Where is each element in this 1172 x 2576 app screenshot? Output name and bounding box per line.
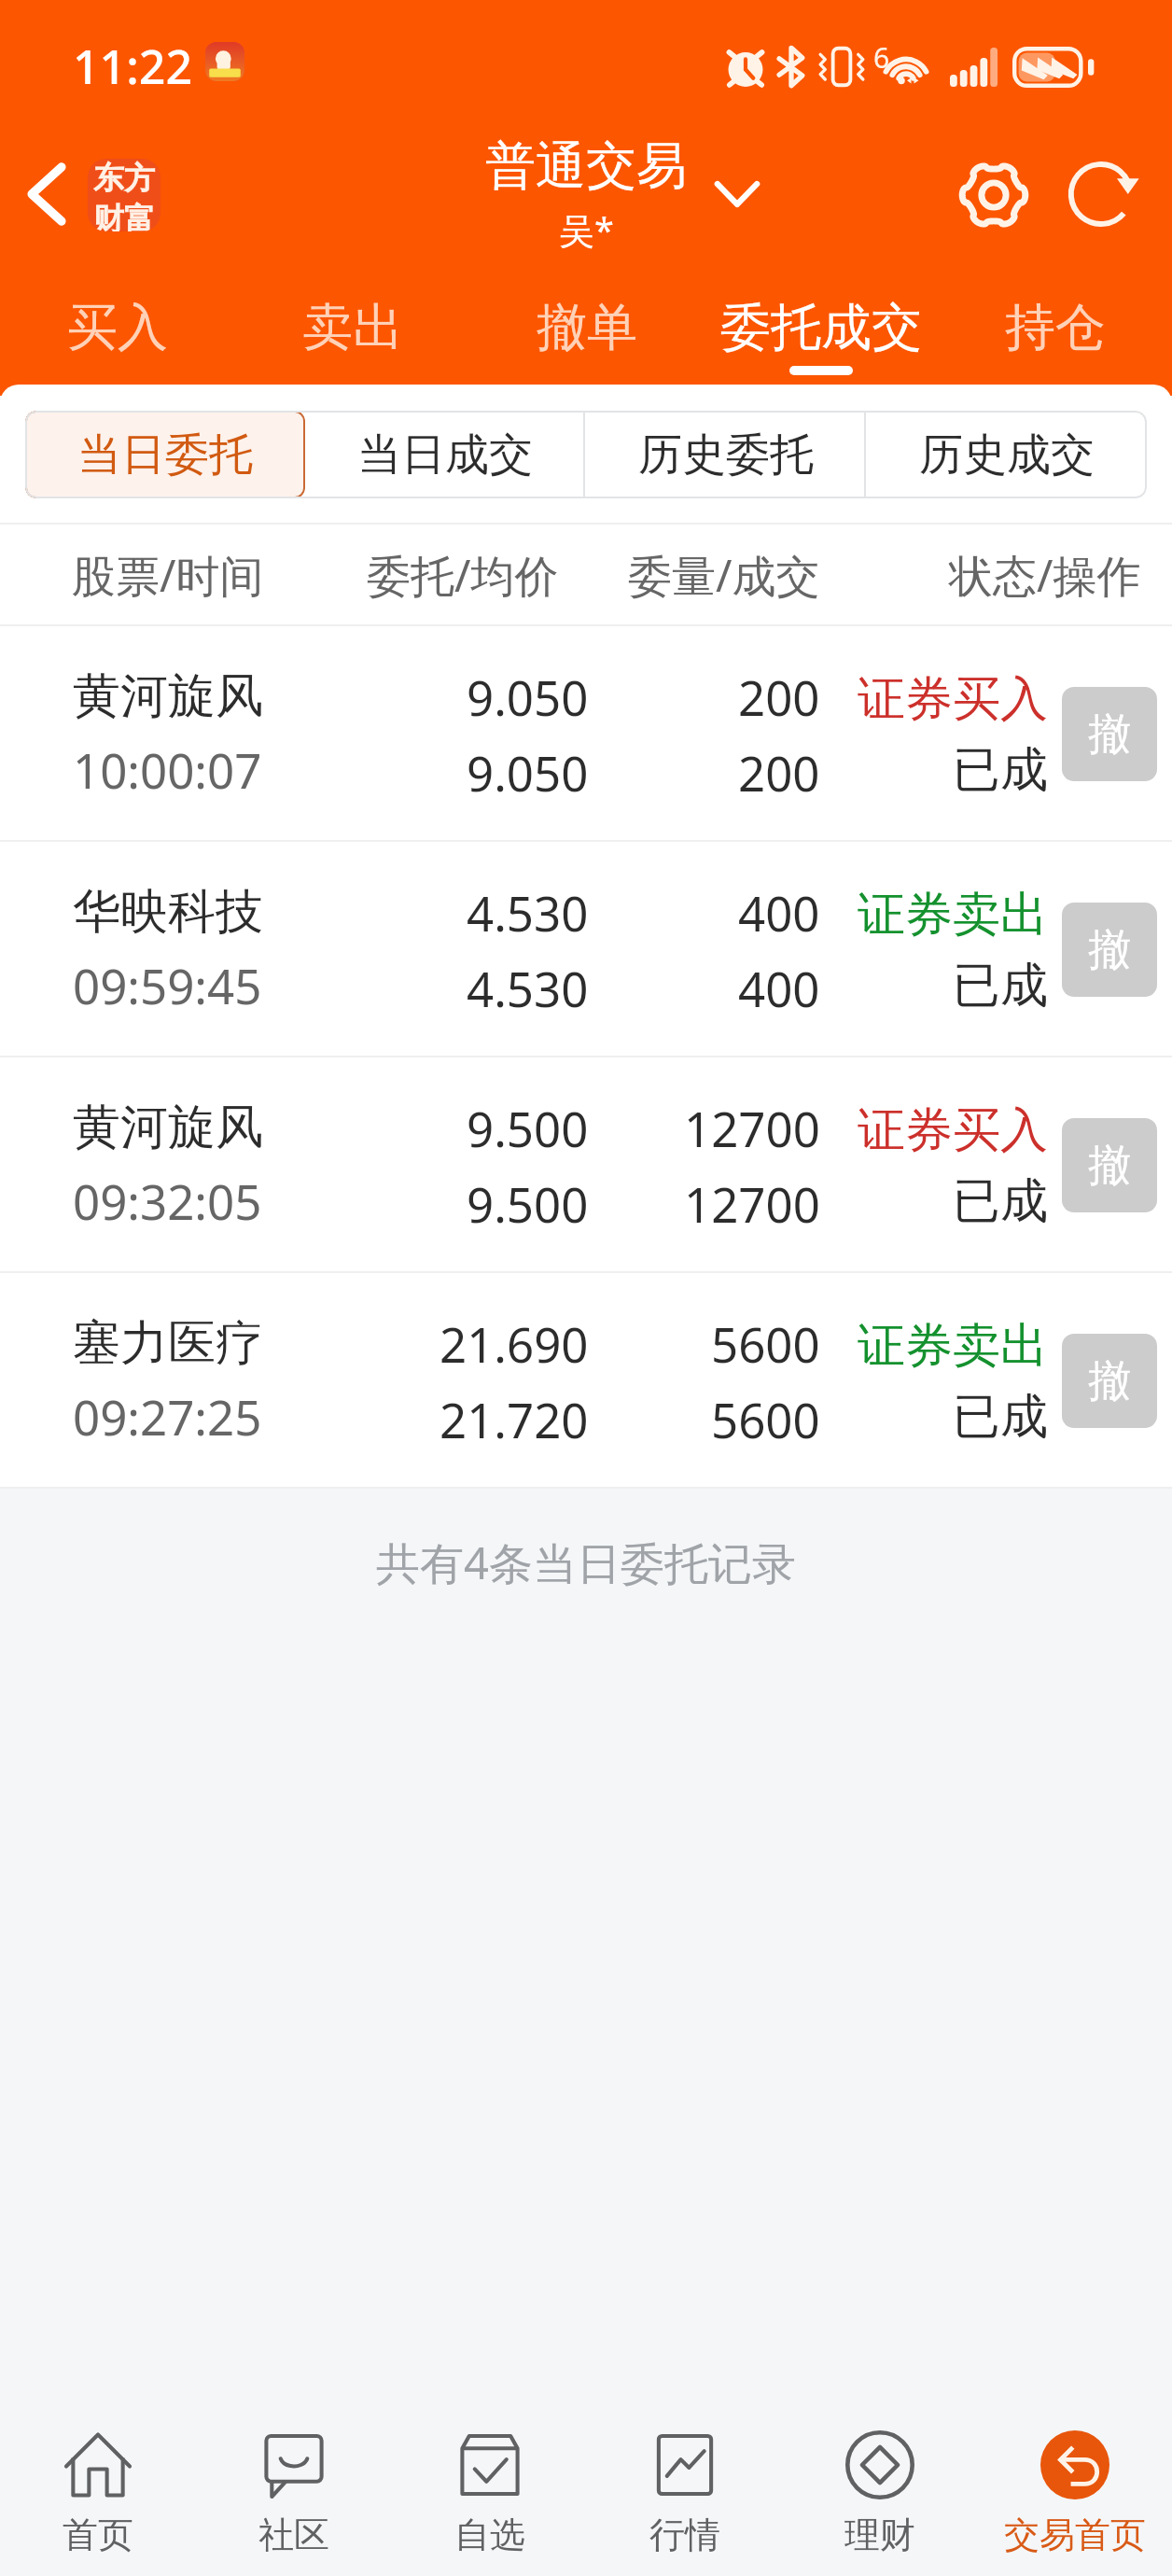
staticText: 塞力医疗 — [73, 1313, 263, 1373]
staticText: 状态/操作 — [949, 545, 1141, 605]
staticText: 200 — [738, 665, 820, 729]
button[interactable]: 撤 — [1062, 687, 1157, 781]
staticText: 证券卖出 — [858, 1316, 1048, 1376]
staticText: 华映科技 — [73, 882, 263, 942]
staticText: 买入 — [67, 296, 168, 359]
staticText: 400 — [738, 880, 820, 945]
button[interactable]: Settings — [949, 149, 1039, 239]
staticText: 社区 — [258, 2513, 329, 2557]
staticText: 09:32:05 — [73, 1169, 262, 1233]
staticText: 撤 — [1088, 923, 1131, 977]
staticText: 撤单 — [537, 296, 637, 359]
staticText: 东方 — [93, 159, 155, 198]
button[interactable]: 塞力医疗 — [0, 1273, 1172, 1489]
staticText: 5600 — [711, 1311, 820, 1376]
staticText: 理财 — [844, 2513, 915, 2557]
button[interactable]: 委托成交 — [704, 275, 938, 396]
button[interactable]: 撤单 — [469, 275, 704, 396]
button[interactable]: 当日委托 — [25, 411, 305, 498]
staticText: 9.050 — [467, 740, 589, 805]
staticText: 已成 — [953, 956, 1048, 1015]
button[interactable]: 撤 — [1062, 1334, 1157, 1428]
staticText: 当日成交 — [357, 427, 533, 483]
staticText: 撤 — [1088, 1354, 1131, 1408]
button[interactable]: 买入 — [0, 275, 235, 396]
staticText: 行情 — [649, 2513, 720, 2557]
button[interactable]: 黄河旋风 — [0, 626, 1172, 842]
staticText: 历史成交 — [919, 427, 1095, 483]
staticText: 股票/时间 — [72, 545, 264, 605]
staticText: 已成 — [953, 1387, 1048, 1447]
button[interactable]: 撤 — [1062, 1118, 1157, 1212]
staticText: 持仓 — [1005, 296, 1106, 359]
staticText: 21.720 — [439, 1387, 589, 1451]
button[interactable]: 自选 — [392, 2389, 587, 2576]
button[interactable]: 交易首页 — [977, 2389, 1172, 2576]
button[interactable]: Back — [0, 149, 93, 239]
staticText: 当日委托 — [77, 427, 253, 483]
staticText: 400 — [738, 956, 820, 1020]
staticText: 5600 — [711, 1387, 820, 1451]
staticText: 已成 — [953, 1171, 1048, 1231]
staticText: 11:22 — [73, 35, 192, 98]
staticText: 10:00:07 — [73, 737, 262, 802]
staticText: 6 — [873, 38, 890, 77]
button[interactable]: 普通交易 — [485, 134, 687, 254]
staticText: 黄河旋风 — [73, 1098, 263, 1157]
staticText: 黄河旋风 — [73, 666, 263, 726]
staticText: 200 — [738, 740, 820, 805]
button[interactable]: East Money — [88, 159, 160, 231]
button[interactable]: 首页 — [0, 2389, 196, 2576]
staticText: 委托/均价 — [367, 545, 559, 605]
staticText: 9.500 — [467, 1171, 589, 1236]
button[interactable]: 历史成交 — [866, 411, 1147, 498]
button[interactable]: 卖出 — [235, 275, 469, 396]
staticText: 交易首页 — [1004, 2513, 1146, 2557]
staticText: 09:59:45 — [73, 953, 262, 1017]
staticText: 首页 — [63, 2513, 133, 2557]
staticText: 撤 — [1088, 707, 1131, 762]
button[interactable]: 持仓 — [938, 275, 1172, 396]
staticText: 卖出 — [302, 296, 403, 359]
button[interactable]: Refresh — [1059, 149, 1149, 239]
staticText: 9.050 — [467, 665, 589, 729]
button[interactable]: 当日成交 — [305, 411, 585, 498]
staticText: 撤 — [1088, 1139, 1131, 1193]
button[interactable]: 行情 — [587, 2389, 782, 2576]
staticText: 证券买入 — [858, 1100, 1048, 1160]
staticText: 已成 — [953, 740, 1048, 800]
staticText: 12700 — [684, 1096, 820, 1160]
staticText: 9.500 — [467, 1096, 589, 1160]
staticText: 09:27:25 — [73, 1384, 262, 1449]
button[interactable]: 撤 — [1062, 903, 1157, 997]
button[interactable]: 社区 — [196, 2389, 392, 2576]
staticText: 委托成交 — [720, 296, 922, 359]
staticText: 证券卖出 — [858, 885, 1048, 945]
staticText: 12700 — [684, 1171, 820, 1236]
staticText: 共有4条当日委托记录 — [376, 1533, 796, 1592]
staticText: 自选 — [454, 2513, 525, 2557]
button[interactable]: 理财 — [782, 2389, 977, 2576]
staticText: 历史委托 — [638, 427, 814, 483]
button[interactable]: 华映科技 — [0, 842, 1172, 1057]
staticText: 21.690 — [439, 1311, 589, 1376]
staticText: 委量/成交 — [628, 545, 820, 605]
staticText: 普通交易 — [485, 134, 687, 198]
button[interactable]: 历史委托 — [585, 411, 866, 498]
staticText: 4.530 — [467, 880, 589, 945]
staticText: 证券买入 — [858, 669, 1048, 729]
button[interactable]: 黄河旋风 — [0, 1057, 1172, 1273]
staticText: 吴* — [559, 205, 614, 254]
staticText: 4.530 — [467, 956, 589, 1020]
staticText: 财富 — [93, 200, 155, 231]
